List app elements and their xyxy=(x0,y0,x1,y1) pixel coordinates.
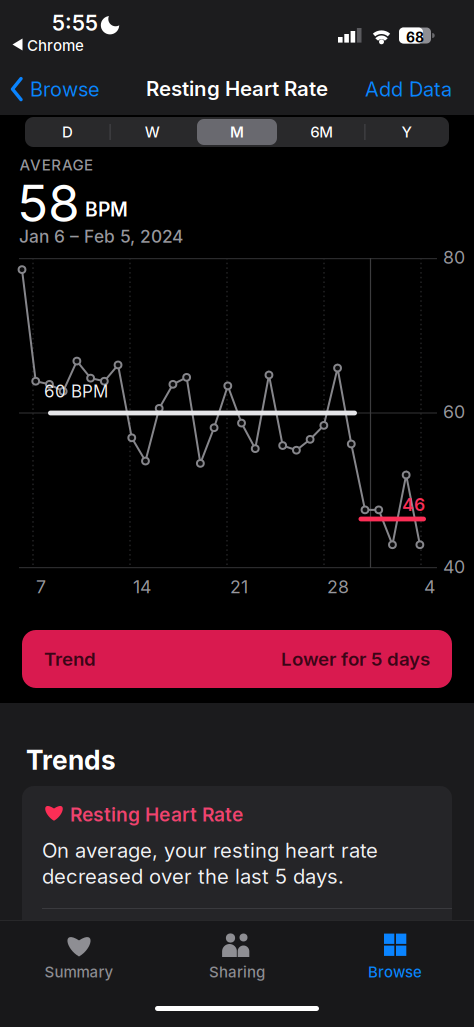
staticText: Add Data xyxy=(365,77,452,101)
staticText: Chrome xyxy=(27,36,84,55)
staticText: Lower for 5 days xyxy=(281,648,430,670)
button[interactable]: Summary xyxy=(0,930,158,992)
staticText: 6M xyxy=(310,123,333,141)
staticText: Browse xyxy=(30,77,100,101)
staticText: Browse xyxy=(368,963,422,981)
staticText: Resting Heart Rate xyxy=(146,76,328,101)
staticText: 4 xyxy=(424,576,435,597)
staticText: AVERAGE xyxy=(19,156,93,174)
staticText: 46 xyxy=(402,494,425,515)
staticText: Sharing xyxy=(209,963,265,981)
button[interactable]: 6M xyxy=(279,117,364,147)
staticText: decreased over the last 5 days. xyxy=(42,864,344,888)
staticText: 60 BPM xyxy=(44,381,108,402)
staticText: On average, your resting heart rate xyxy=(42,838,378,862)
staticText: Summary xyxy=(44,963,113,981)
button[interactable]: Y xyxy=(364,117,449,147)
staticText: 40 xyxy=(443,556,465,577)
button[interactable]: D xyxy=(25,117,110,147)
staticText: W xyxy=(145,123,160,141)
button[interactable]: Browse xyxy=(316,930,474,992)
staticText: 5:55 xyxy=(52,10,98,36)
staticText: 60 xyxy=(443,401,465,422)
button[interactable]: W xyxy=(110,117,195,147)
staticText: 68 xyxy=(406,29,424,46)
button[interactable]: Browse xyxy=(11,77,100,101)
button[interactable]: M xyxy=(195,117,279,147)
staticText: Resting Heart Rate xyxy=(70,803,243,826)
staticText: Trend xyxy=(44,648,96,670)
staticText: 80 xyxy=(443,246,465,268)
staticText: D xyxy=(62,123,73,141)
staticText: 14 xyxy=(133,576,151,597)
staticText: BPM xyxy=(85,198,128,221)
staticText: M xyxy=(230,123,244,141)
staticText: 21 xyxy=(230,576,248,597)
staticText: 28 xyxy=(327,576,349,597)
staticText: Y xyxy=(402,123,412,141)
button[interactable]: Resting Heart Rate xyxy=(22,786,452,936)
button[interactable]: Add Data xyxy=(272,77,452,101)
staticText: 58 xyxy=(17,172,80,234)
staticText: Trends xyxy=(26,744,116,776)
button[interactable]: Sharing xyxy=(158,930,316,992)
staticText: Jan 6 – Feb 5, 2024 xyxy=(19,226,183,247)
staticText: 7 xyxy=(36,576,46,597)
button[interactable]: Trend xyxy=(22,630,452,688)
